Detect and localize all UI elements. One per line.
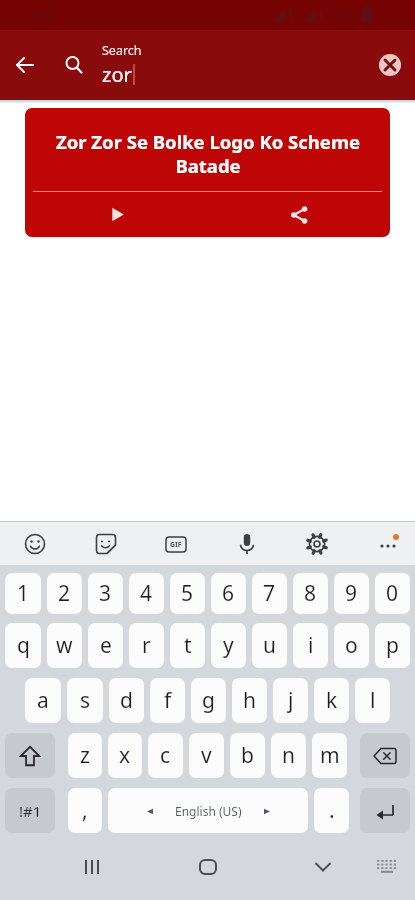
button[interactable]: s <box>67 678 103 723</box>
button[interactable]: 9 <box>334 573 369 614</box>
button[interactable] <box>379 54 401 76</box>
button[interactable]: r <box>129 623 164 668</box>
button[interactable]: c <box>148 733 183 778</box>
button[interactable]: b <box>230 733 265 778</box>
button[interactable]: v <box>189 733 224 778</box>
staticText: p <box>386 631 399 660</box>
staticText: . <box>329 796 335 825</box>
button[interactable]: GIF <box>162 530 190 558</box>
button[interactable]: h <box>232 678 267 723</box>
button[interactable]: , <box>68 788 102 833</box>
button[interactable] <box>16 56 34 74</box>
button[interactable] <box>65 56 83 74</box>
button[interactable] <box>374 530 402 558</box>
button[interactable]: t <box>170 623 205 668</box>
staticText: h <box>243 686 256 715</box>
staticText: , <box>82 796 88 825</box>
staticText: zor <box>102 61 132 88</box>
staticText: i <box>308 631 314 660</box>
staticText: Zor Zor Se Bolke Logo Ko Scheme Batade <box>56 129 360 178</box>
staticText: a <box>37 686 49 715</box>
button[interactable]: 6 <box>211 573 246 614</box>
button[interactable] <box>360 733 410 778</box>
staticText: e <box>100 631 112 660</box>
staticText: 1 <box>17 579 30 608</box>
button[interactable] <box>289 205 309 225</box>
button[interactable]: f <box>150 678 185 723</box>
button[interactable]: x <box>108 733 142 778</box>
staticText: 2 <box>58 579 71 608</box>
button[interactable] <box>360 788 410 833</box>
button[interactable]: a <box>25 678 61 723</box>
button[interactable] <box>5 733 55 778</box>
staticText: y <box>223 631 234 660</box>
button[interactable]: y <box>211 623 246 668</box>
button[interactable]: n <box>271 733 306 778</box>
button[interactable] <box>21 530 49 558</box>
staticText: b <box>241 741 254 770</box>
button[interactable]: 0 <box>375 573 410 614</box>
staticText: 3 <box>99 579 112 608</box>
staticText: 7 <box>263 579 276 608</box>
button[interactable]: j <box>273 678 308 723</box>
staticText: 6 <box>222 579 235 608</box>
button[interactable]: 4 <box>129 573 164 614</box>
staticText: r <box>142 631 151 660</box>
staticText: Search <box>102 42 142 59</box>
button[interactable]: 8 <box>293 573 328 614</box>
staticText: u <box>263 631 276 660</box>
staticText: t <box>184 631 192 660</box>
staticText: z <box>80 741 90 770</box>
button[interactable] <box>311 855 335 879</box>
button[interactable]: 3 <box>88 573 123 614</box>
staticText: q <box>17 631 30 660</box>
button[interactable]: 5 <box>170 573 205 614</box>
button[interactable]: p <box>375 623 410 668</box>
staticText: 9 <box>345 579 358 608</box>
staticText: c <box>160 741 171 770</box>
button[interactable] <box>196 855 220 879</box>
button[interactable]: 7 <box>252 573 287 614</box>
staticText: l <box>370 686 376 715</box>
button[interactable]: !#1 <box>5 788 55 833</box>
button[interactable]: d <box>109 678 144 723</box>
button[interactable]: z <box>68 733 102 778</box>
button[interactable]: 1 <box>5 573 41 614</box>
staticText: 4 <box>140 579 153 608</box>
staticText: x <box>119 741 131 770</box>
button[interactable]: 2 <box>47 573 82 614</box>
staticText: o <box>345 631 358 660</box>
staticText: English (US) <box>175 803 242 819</box>
staticText: GIF <box>170 540 182 550</box>
button[interactable]: e <box>88 623 123 668</box>
staticText: s <box>80 686 91 715</box>
button[interactable]: k <box>314 678 349 723</box>
button[interactable] <box>106 204 127 225</box>
staticText: f <box>164 686 172 715</box>
button[interactable]: English (US) <box>108 788 308 833</box>
button[interactable] <box>375 855 399 879</box>
button[interactable] <box>92 530 120 558</box>
staticText: m <box>320 741 340 770</box>
button[interactable]: o <box>334 623 369 668</box>
button[interactable]: w <box>47 623 82 668</box>
button[interactable]: Zor Zor Se Bolke Logo Ko Scheme Batade <box>25 108 390 237</box>
staticText: j <box>288 686 294 715</box>
button[interactable]: q <box>5 623 41 668</box>
staticText: v <box>201 741 212 770</box>
button[interactable]: i <box>293 623 328 668</box>
button[interactable]: l <box>355 678 390 723</box>
button[interactable] <box>303 530 331 558</box>
button[interactable] <box>233 530 261 558</box>
staticText: w <box>56 631 73 660</box>
staticText: g <box>202 686 215 715</box>
button[interactable]: m <box>312 733 347 778</box>
staticText: !#1 <box>19 801 42 821</box>
button[interactable]: . <box>314 788 349 833</box>
staticText: 8 <box>304 579 317 608</box>
button[interactable] <box>80 855 104 879</box>
button[interactable]: u <box>252 623 287 668</box>
button[interactable]: g <box>191 678 226 723</box>
staticText: 1:58 <box>30 7 54 23</box>
staticText: 5 <box>181 579 194 608</box>
